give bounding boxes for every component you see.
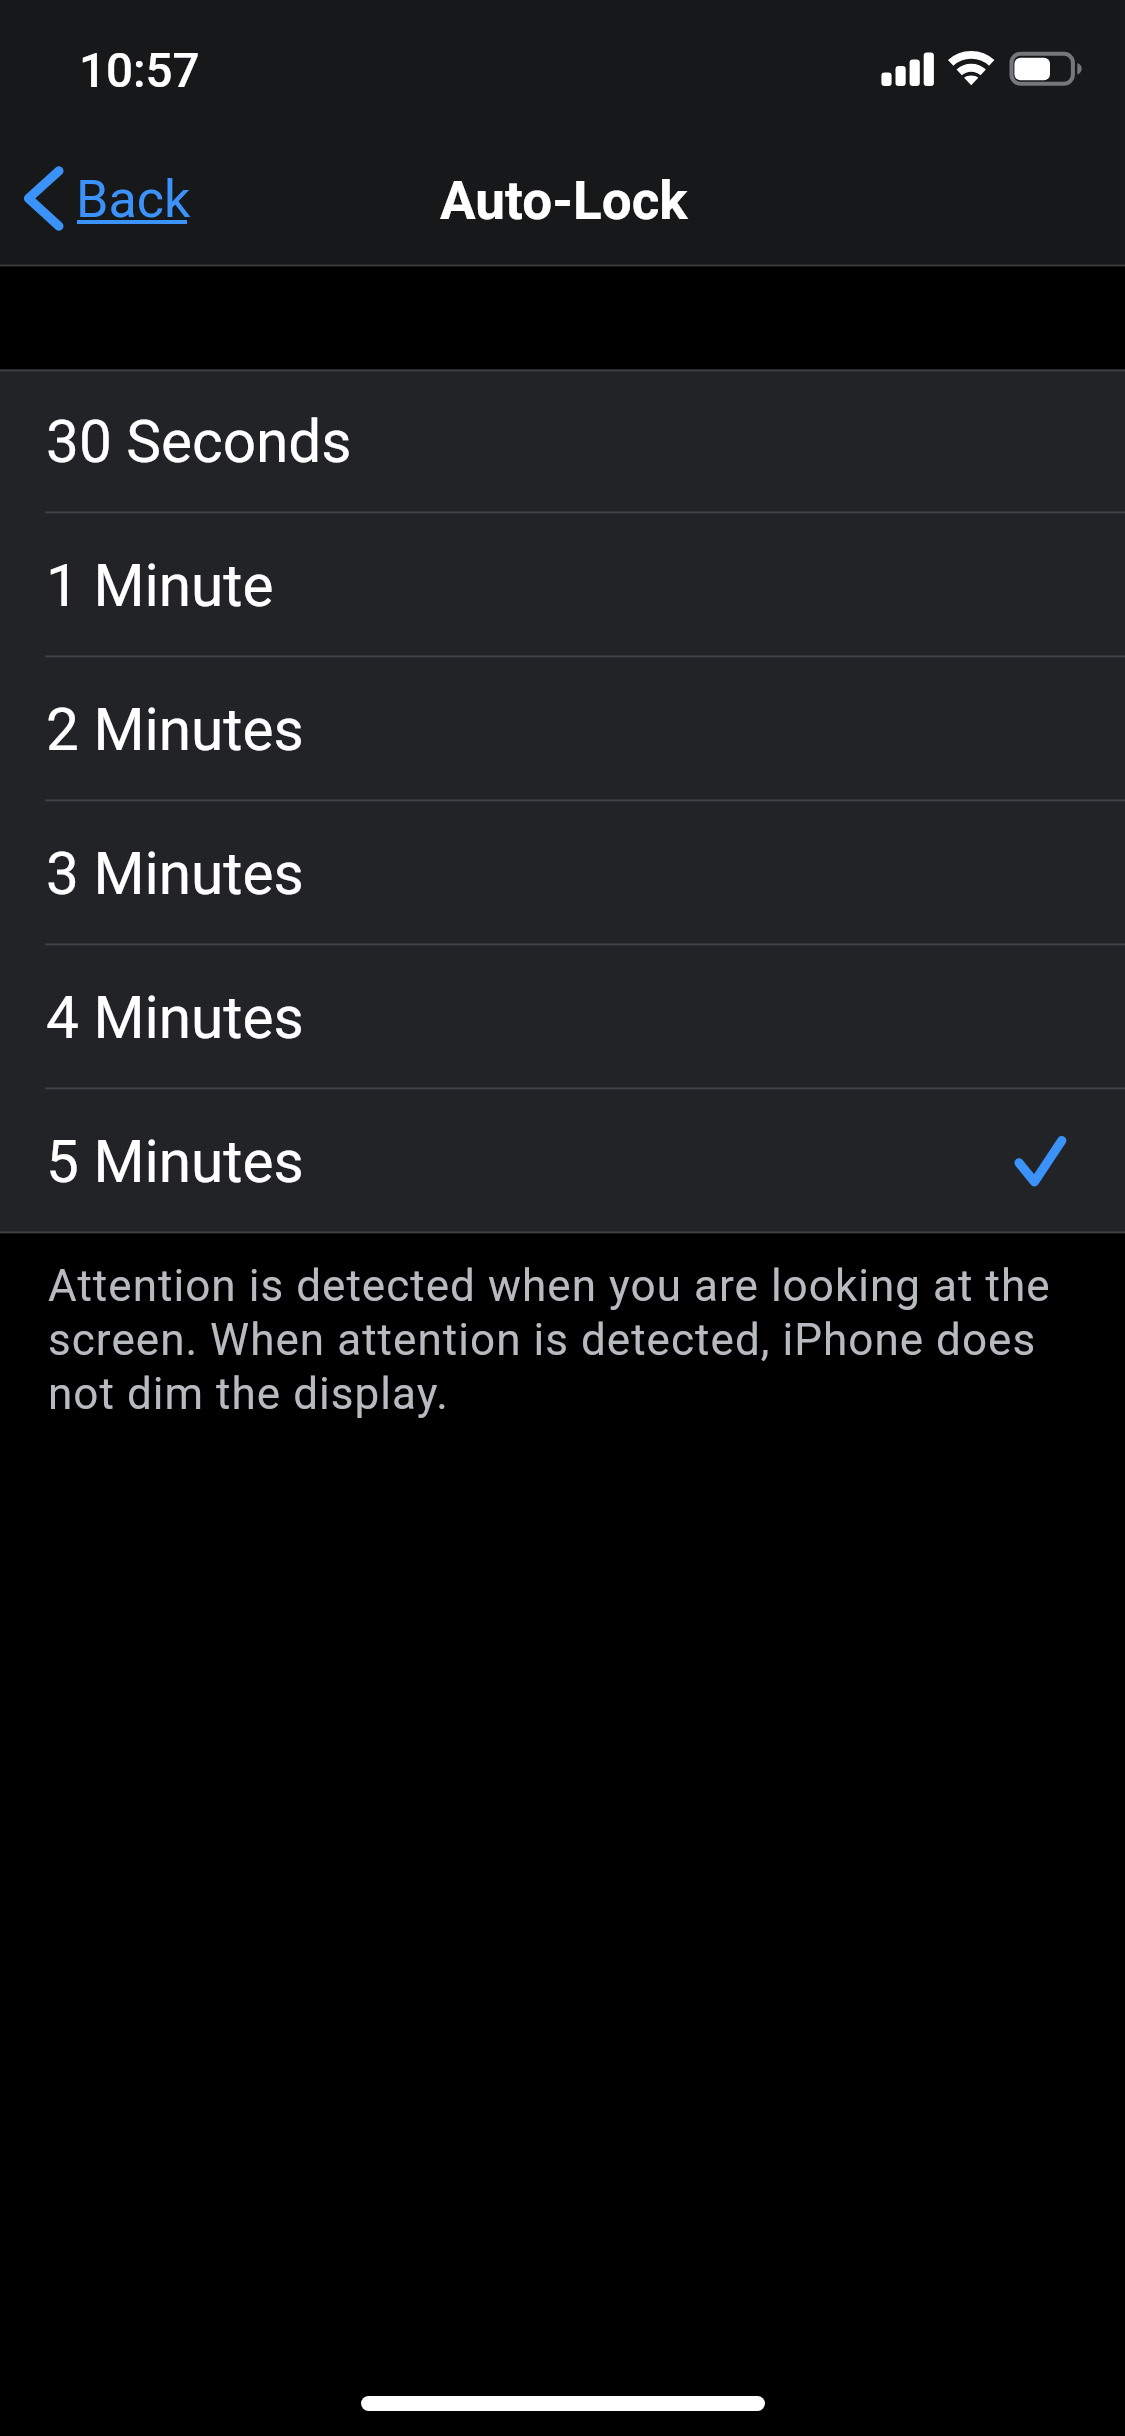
staticText: 1 Minute	[46, 552, 274, 621]
other: Signal, Wi-Fi and battery status	[878, 48, 1090, 88]
staticText: 2 Minutes	[46, 696, 304, 765]
button[interactable]: 4 Minutes	[0, 944, 1125, 1088]
button[interactable]: 30 Seconds	[0, 370, 1125, 513]
other: Selected	[1013, 1135, 1069, 1191]
button[interactable]: 5 Minutes	[0, 1088, 1125, 1232]
staticText: Attention is detected when you are looki…	[48, 1260, 1078, 1419]
button[interactable]: Back	[0, 132, 215, 263]
staticText: 4 Minutes	[46, 984, 304, 1053]
button[interactable]: 3 Minutes	[0, 800, 1125, 944]
staticText: 30 Seconds	[46, 408, 352, 477]
staticText: 10:57	[79, 43, 200, 99]
staticText: 3 Minutes	[46, 840, 304, 909]
staticText: 5 Minutes	[46, 1128, 304, 1197]
staticText: Auto-Lock	[440, 170, 688, 232]
button[interactable]: 1 Minute	[0, 512, 1125, 656]
staticText: Back	[76, 169, 191, 230]
button[interactable]: 2 Minutes	[0, 656, 1125, 800]
